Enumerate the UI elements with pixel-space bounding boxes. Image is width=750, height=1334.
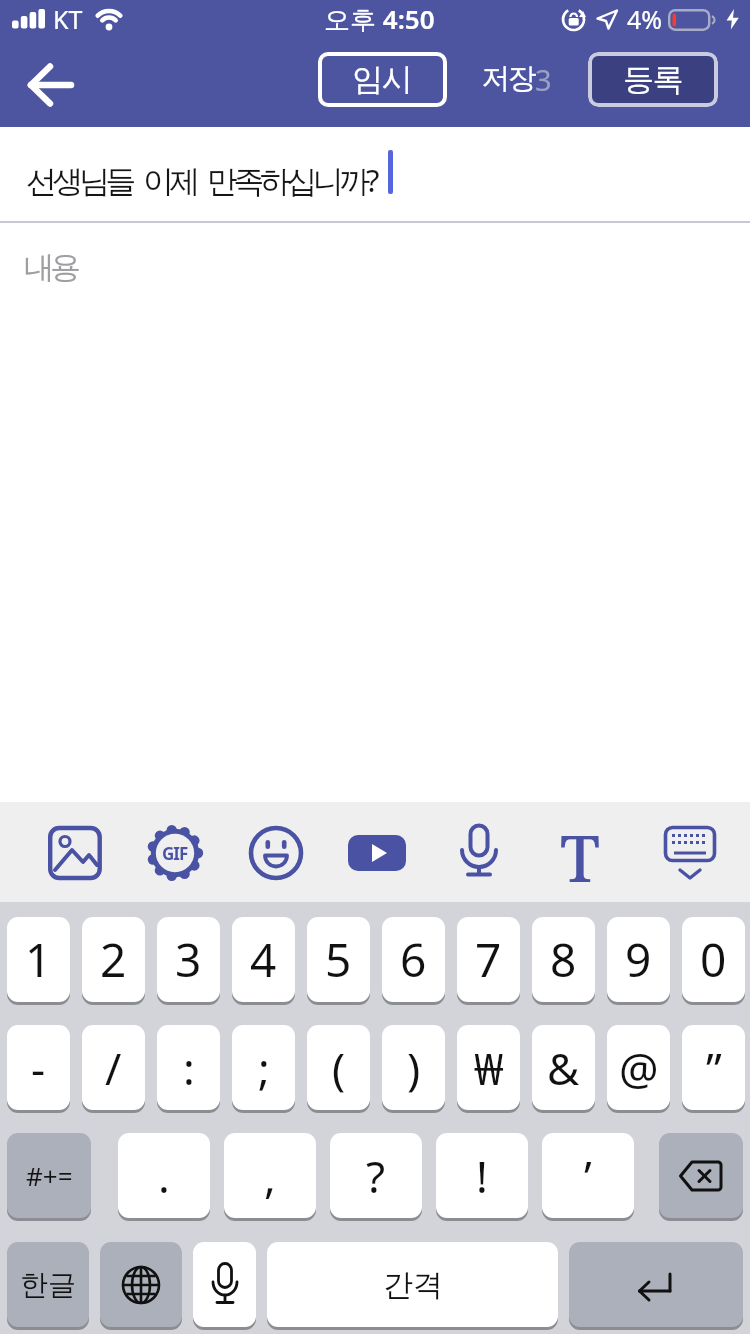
staticText: 0 <box>700 928 727 991</box>
button[interactable]: - <box>7 1025 70 1110</box>
button[interactable]: 8 <box>532 917 595 1002</box>
button[interactable]: GIF <box>140 818 210 888</box>
button[interactable]: 9 <box>607 917 670 1002</box>
staticText: 5 <box>325 928 352 991</box>
button[interactable]: 2 <box>82 917 145 1002</box>
button[interactable]: 등록 <box>588 52 718 107</box>
button[interactable] <box>652 818 728 894</box>
staticText: ) <box>407 1038 421 1098</box>
button[interactable] <box>342 818 412 888</box>
button[interactable]: : <box>157 1025 220 1110</box>
staticText: 8 <box>550 928 577 991</box>
button[interactable]: , <box>224 1133 316 1218</box>
button[interactable] <box>659 1133 743 1218</box>
staticText: 선생님들 이제 만족하십니까? <box>26 159 375 201</box>
button[interactable]: 한글 <box>7 1242 89 1327</box>
staticText: 4 <box>250 928 277 991</box>
staticText: KT <box>53 2 83 36</box>
staticText: : <box>183 1038 195 1098</box>
button[interactable] <box>444 818 514 888</box>
button[interactable]: T <box>545 814 615 888</box>
button[interactable] <box>241 818 311 888</box>
button[interactable] <box>100 1242 182 1327</box>
button[interactable] <box>569 1242 743 1327</box>
button[interactable]: ” <box>682 1025 745 1110</box>
button[interactable]: 5 <box>307 917 370 1002</box>
staticText: ₩ <box>474 1038 504 1098</box>
staticText: 등록 <box>624 60 683 99</box>
button[interactable]: ₩ <box>457 1025 520 1110</box>
staticText: T <box>560 814 600 888</box>
staticText: 2 <box>100 928 127 991</box>
button[interactable]: 간격 <box>267 1242 558 1327</box>
staticText: ” <box>706 1038 722 1098</box>
staticText: ; <box>258 1038 270 1098</box>
button[interactable]: ( <box>307 1025 370 1110</box>
button[interactable]: . <box>118 1133 210 1218</box>
button[interactable]: 4 <box>232 917 295 1002</box>
button[interactable]: ) <box>382 1025 445 1110</box>
staticText: ! <box>476 1146 488 1206</box>
button[interactable]: & <box>532 1025 595 1110</box>
staticText: @ <box>619 1038 659 1098</box>
button[interactable]: 0 <box>682 917 745 1002</box>
staticText: 6 <box>400 928 427 991</box>
staticText: 간격 <box>383 1266 443 1304</box>
button[interactable]: ’ <box>542 1133 634 1218</box>
button[interactable]: #+= <box>7 1133 91 1218</box>
button[interactable]: 6 <box>382 917 445 1002</box>
staticText: & <box>547 1038 580 1098</box>
staticText: 1 <box>25 928 52 991</box>
button[interactable] <box>20 54 82 116</box>
staticText: #+= <box>26 1158 73 1193</box>
staticText: 7 <box>475 928 502 991</box>
staticText: 내용 <box>26 248 79 287</box>
button[interactable]: 임시 <box>318 52 447 107</box>
button[interactable] <box>40 818 110 888</box>
staticText: / <box>105 1038 122 1098</box>
staticText: 9 <box>625 928 652 991</box>
staticText: 저장 <box>483 60 535 97</box>
staticText: 3 <box>175 928 202 991</box>
button[interactable]: 3 <box>157 917 220 1002</box>
button[interactable]: / <box>82 1025 145 1110</box>
button[interactable]: 저장 <box>483 52 552 107</box>
staticText: - <box>31 1038 46 1098</box>
staticText: GIF <box>162 842 188 865</box>
staticText: ? <box>366 1146 386 1206</box>
staticText: 한글 <box>20 1267 76 1302</box>
button[interactable]: ! <box>436 1133 528 1218</box>
staticText: 3 <box>535 60 552 99</box>
staticText: 4% <box>627 2 663 36</box>
staticText: 임시 <box>353 60 412 99</box>
button[interactable]: ? <box>330 1133 422 1218</box>
staticText: ’ <box>584 1146 592 1206</box>
button[interactable]: 7 <box>457 917 520 1002</box>
button[interactable]: @ <box>607 1025 670 1110</box>
staticText: , <box>264 1146 276 1206</box>
button[interactable]: 1 <box>7 917 70 1002</box>
button[interactable] <box>193 1242 256 1327</box>
button[interactable]: ; <box>232 1025 295 1110</box>
staticText: 오후 4:50 <box>324 1 435 37</box>
staticText: . <box>158 1146 170 1206</box>
staticText: ( <box>332 1038 346 1098</box>
